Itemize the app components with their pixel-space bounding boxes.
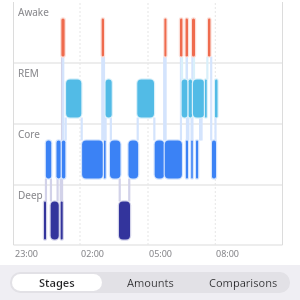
staticText: Amounts	[127, 275, 174, 290]
button[interactable]: Amounts	[106, 274, 195, 291]
staticText: 02:00	[81, 247, 105, 259]
staticText: 05:00	[149, 247, 173, 259]
staticText: 23:00	[15, 247, 39, 259]
staticText: 08:00	[216, 247, 240, 259]
button[interactable]: Stages	[12, 274, 102, 291]
staticText: Deep	[18, 188, 43, 202]
staticText: REM	[18, 66, 39, 80]
button[interactable]: Comparisons	[199, 274, 288, 291]
staticText: Awake	[18, 5, 49, 19]
staticText: Comparisons	[209, 275, 278, 290]
staticText: Core	[18, 127, 40, 141]
staticText: Stages	[39, 275, 75, 290]
